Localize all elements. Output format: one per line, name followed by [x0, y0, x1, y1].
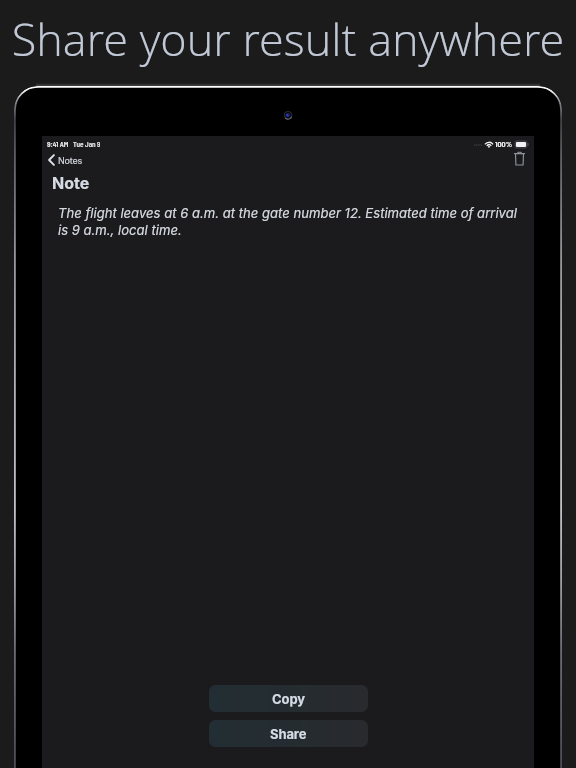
button[interactable]: Share [209, 720, 368, 747]
staticText: Tue Jan 9 [73, 140, 101, 149]
button[interactable]: Copy [209, 685, 368, 712]
staticText: The flight leaves at 6 a.m. at the gate … [58, 205, 524, 238]
staticText: Share your result anywhere [0, 8, 576, 69]
staticText: Share [270, 726, 307, 742]
staticText: 100% [495, 139, 513, 149]
staticText: Copy [272, 691, 305, 707]
button[interactable]: Delete note [509, 149, 529, 169]
button[interactable]: Notes [46, 151, 85, 169]
staticText: 9:41 AM [47, 140, 69, 149]
staticText: Notes [58, 155, 83, 166]
staticText: Note [52, 173, 90, 192]
